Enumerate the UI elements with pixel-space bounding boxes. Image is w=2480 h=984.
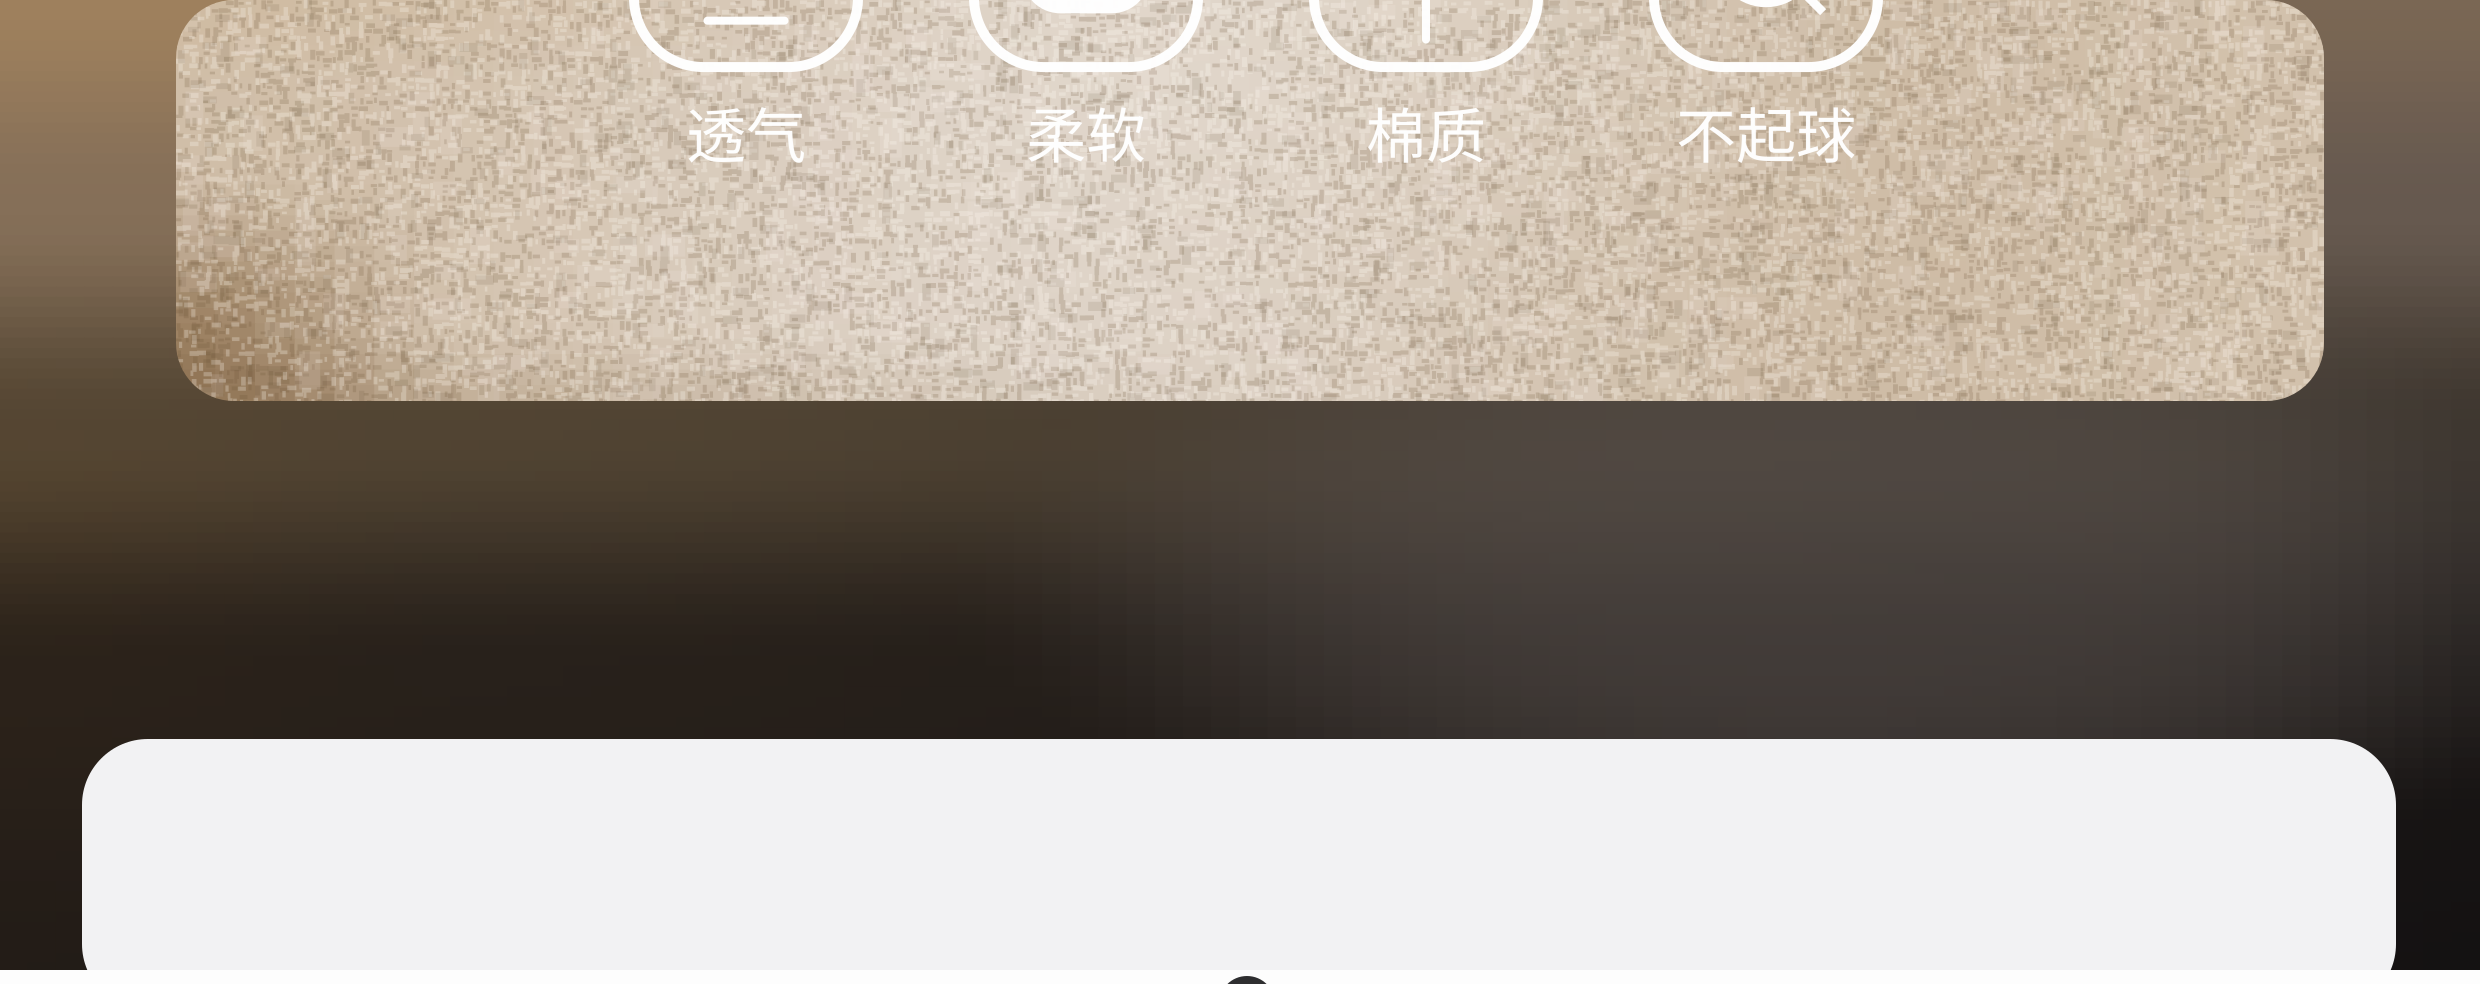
staticText: 柔软 <box>1026 88 1146 175</box>
button[interactable]: 透气 <box>576 0 916 175</box>
button[interactable]: Cart <box>1219 976 1275 984</box>
button[interactable]: 柔软 <box>916 0 1256 175</box>
staticText: 棉质 <box>1366 88 1486 175</box>
button[interactable]: 不起球 <box>1596 0 1936 175</box>
staticText: 不起球 <box>1676 88 1856 175</box>
staticText: 透气 <box>686 88 806 175</box>
button[interactable]: 棉质 <box>1256 0 1596 175</box>
